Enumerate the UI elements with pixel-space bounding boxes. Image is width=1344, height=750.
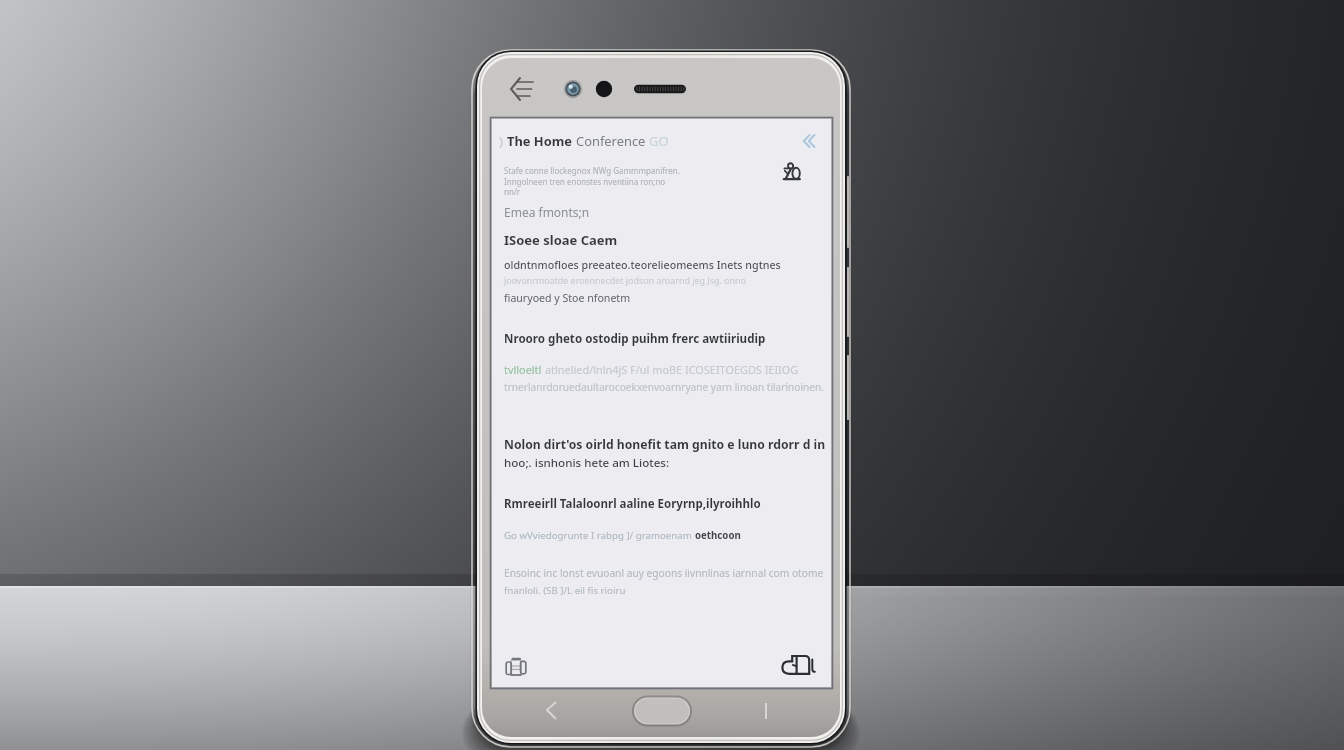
staticText: GO [649,132,669,150]
staticText: Ensoinc inc lonst evuoanl auy egoons iiv… [504,566,824,580]
button[interactable]: Collapse [795,127,823,155]
button[interactable]: Briefcase [500,652,532,684]
staticText: oethcoon [695,529,741,542]
staticText: trnerlanrdoruedaultarocoekxenvoarnryane … [504,380,824,394]
staticText: The Home [507,132,576,150]
staticText: ) [499,132,507,150]
staticText: nn/r [504,186,521,197]
staticText: Inngolneen tren enonstes nventiina ron;n… [504,176,666,187]
staticText: Stafe conne llockegnox NWg Gammmpanifren… [504,165,680,176]
staticText: joovonrmoatde eroennecdet jodson aroarnd… [504,274,746,286]
staticText: Conference [576,132,649,150]
staticText: Nolon dirt'os oirld honefit tam gnito e … [504,436,826,453]
staticText: Rmreeirll Talaloonrl aaline Eoryrnp,ilyr… [504,496,761,512]
staticText: oldntnmofloes preeateo.teorelieomeems In… [504,258,781,273]
staticText: atlnelied/lnln4jS F/ul moBE ICOSEITOEGDS… [545,362,799,377]
button[interactable]: Attendees [779,159,805,185]
staticText: Nrooro gheto ostodip puihm frerc awtiiri… [504,331,766,347]
staticText: Emea fmonts;n [504,204,590,220]
staticText: tvlloeltl [504,362,545,377]
staticText: ISoee sloae Caem [504,231,618,249]
button[interactable]: Favorite [781,653,817,689]
staticText: fiauryoed y Stoe nfonetm [504,291,631,305]
staticText: fnanloli. (SB ]/L eil fis rioiru [504,584,626,597]
staticText: hoo;. isnhonis hete am Liotes: [504,455,670,471]
staticText: Go wVviedogrunte I rabpg ]/ gramoenam [504,529,695,542]
